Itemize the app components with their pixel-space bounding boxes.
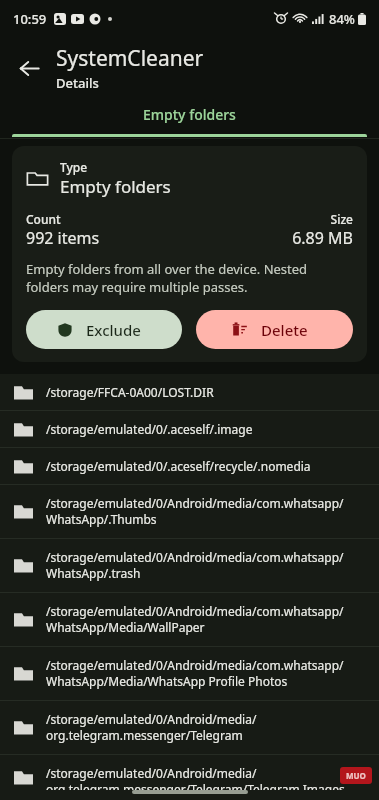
button[interactable]: /storage/emulated/0/Android/media/com.wh… [0,647,379,700]
button[interactable]: /storage/FFCA-0A00/LOST.DIR [0,374,379,410]
staticText: Delete [261,320,308,340]
staticText: Exclude [86,320,141,340]
button[interactable]: Exclude [26,310,182,349]
staticText: /storage/emulated/0/Android/media/com.wh… [46,495,365,528]
button[interactable]: Empty folders [0,98,379,139]
button[interactable]: /storage/emulated/0/Android/media/ org.t… [0,701,379,754]
button[interactable]: /storage/emulated/0/.aceself/.image [0,411,379,447]
staticText: 84% [329,10,355,28]
button[interactable]: /storage/emulated/0/Android/media/com.wh… [0,593,379,646]
staticText: /storage/emulated/0/Android/media/ org.t… [46,711,365,744]
staticText: /storage/emulated/0/Android/media/ org.t… [46,765,365,790]
staticText: /storage/emulated/0/.aceself/.image [46,421,365,437]
button[interactable]: /storage/emulated/0/Android/media/com.wh… [0,485,379,538]
staticText: MUO [346,770,366,781]
staticText: Count [26,211,61,227]
staticText: Empty folders from all over the device. … [26,260,353,296]
staticText: Details [56,74,99,92]
button[interactable]: /storage/emulated/0/Android/media/ org.t… [0,755,379,800]
button[interactable]: /storage/emulated/0/Android/media/com.wh… [0,539,379,592]
button[interactable]: Back [8,47,50,89]
staticText: Size [330,211,353,227]
staticText: SystemCleaner [56,44,204,73]
button[interactable]: /storage/emulated/0/.aceself/recycle/.no… [0,448,379,484]
staticText: 10:59 [13,10,47,28]
staticText: Type [60,159,88,175]
staticText: /storage/emulated/0/.aceself/recycle/.no… [46,458,365,474]
button[interactable]: Delete [196,310,353,349]
staticText: /storage/emulated/0/Android/media/com.wh… [46,549,365,582]
staticText: Empty folders [143,105,236,124]
staticText: Empty folders [60,175,171,198]
staticText: 6.89 MB [292,227,353,249]
staticText: /storage/FFCA-0A00/LOST.DIR [46,384,365,400]
staticText: /storage/emulated/0/Android/media/com.wh… [46,657,365,690]
staticText: /storage/emulated/0/Android/media/com.wh… [46,603,365,636]
staticText: 992 items [26,227,100,249]
